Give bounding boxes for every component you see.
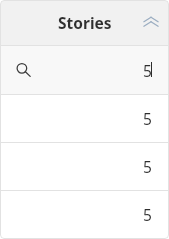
button[interactable]: 5: [1, 191, 168, 238]
button[interactable]: Collapse: [140, 12, 162, 34]
staticText: 5: [143, 60, 152, 81]
button[interactable]: 5: [1, 95, 168, 142]
other: Search: [17, 63, 31, 77]
staticText: 5: [143, 108, 152, 129]
button[interactable]: 5: [1, 143, 168, 190]
button[interactable]: Search: [1, 46, 168, 94]
staticText: Stories: [58, 12, 112, 33]
staticText: 5: [143, 204, 152, 225]
staticText: 5: [143, 156, 152, 177]
